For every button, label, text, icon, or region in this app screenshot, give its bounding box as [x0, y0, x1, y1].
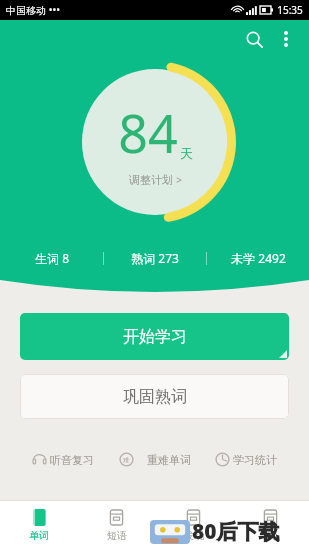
staticText: 天: [180, 145, 193, 161]
staticText: 80后下载: [192, 517, 280, 546]
staticText: 生词 8: [35, 250, 69, 266]
staticText: 发现: [184, 529, 204, 542]
staticText: 未学 2492: [231, 250, 286, 266]
staticText: 84: [118, 97, 178, 168]
staticText: 熟词 273: [131, 250, 179, 266]
button[interactable]: 难: [117, 448, 193, 471]
button[interactable]: 发现: [155, 501, 232, 550]
staticText: 学习统计: [233, 453, 277, 467]
button[interactable]: 未学 2492: [207, 245, 309, 271]
staticText: 中国移动 •••: [6, 3, 60, 17]
button[interactable]: 短语: [78, 501, 155, 550]
staticText: 难: [123, 456, 129, 464]
staticText: >: [176, 173, 182, 187]
button[interactable]: 单词: [0, 501, 78, 550]
button[interactable]: 开始学习: [20, 313, 289, 360]
button[interactable]: More options: [271, 24, 301, 54]
staticText: 重难单词: [147, 453, 191, 467]
staticText: 听音复习: [50, 453, 94, 467]
button[interactable]: 巩固熟词: [20, 374, 289, 419]
staticText: 单词: [29, 529, 49, 542]
button[interactable]: Search: [237, 22, 271, 56]
staticText: 巩固熟词: [123, 387, 187, 407]
staticText: 短语: [107, 529, 127, 542]
button[interactable]: 调整计划: [129, 173, 182, 187]
button[interactable]: 我: [232, 501, 309, 550]
staticText: 开始学习: [123, 327, 187, 347]
button[interactable]: 生词 8: [0, 245, 103, 271]
staticText: 15:35: [277, 3, 303, 17]
button[interactable]: 学习统计: [213, 448, 279, 471]
staticText: 我: [266, 529, 276, 542]
button[interactable]: 熟词 273: [104, 245, 206, 271]
staticText: 调整计划: [129, 173, 173, 187]
button[interactable]: 听音复习: [30, 448, 96, 471]
